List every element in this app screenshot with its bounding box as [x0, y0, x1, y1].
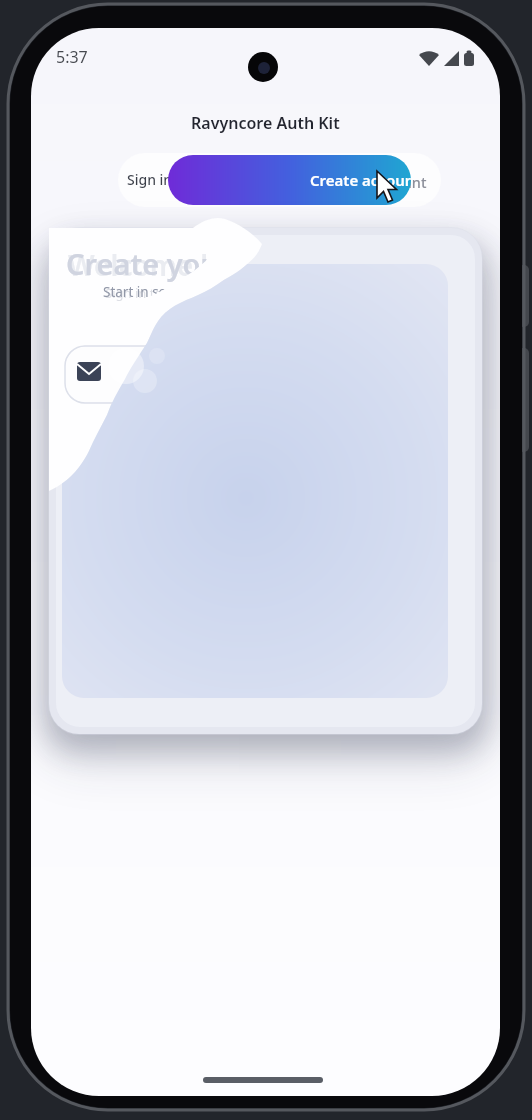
staticText: Ravyncore Auth Kit	[191, 112, 340, 134]
staticText: Create account	[310, 170, 411, 190]
button[interactable]: Sign in	[127, 164, 173, 194]
button[interactable]: Create account	[168, 155, 411, 205]
staticText: Create your	[66, 244, 232, 283]
button[interactable]	[203, 1077, 323, 1083]
button[interactable]	[65, 346, 315, 403]
staticText: Create account	[322, 172, 427, 192]
staticText: Start in seconds	[103, 283, 204, 301]
staticText: 5:37	[56, 46, 88, 68]
staticText: Sign in	[127, 170, 173, 189]
staticText: Sign in to continue	[105, 284, 220, 302]
staticText: Welcome back	[68, 246, 265, 284]
